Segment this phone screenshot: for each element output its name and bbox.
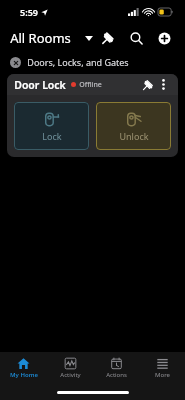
button[interactable]: Doors, Locks, and Gates (10, 56, 185, 68)
button[interactable]: Search (125, 27, 147, 49)
button[interactable]: Activity (47, 352, 93, 384)
staticText: Doors, Locks, and Gates (27, 56, 129, 68)
button[interactable]: My Home (0, 352, 47, 384)
button[interactable]: Lock (14, 102, 89, 150)
button[interactable]: Unlock (96, 102, 171, 150)
button[interactable]: More (139, 352, 185, 384)
staticText: 5:59 (20, 6, 38, 18)
staticText: Offline (79, 80, 102, 90)
button[interactable]: More options (156, 77, 171, 92)
button[interactable]: Pin (97, 27, 119, 49)
staticText: Actions (106, 371, 127, 379)
staticText: Activity (60, 371, 81, 379)
button[interactable]: Pin device (139, 76, 156, 93)
staticText: My Home (10, 371, 38, 379)
button[interactable]: All Rooms (10, 27, 93, 49)
staticText: Lock (42, 130, 62, 142)
staticText: Door Lock (14, 78, 66, 92)
staticText: Unlock (119, 130, 149, 142)
button[interactable]: Add (153, 27, 175, 49)
staticText: More (155, 371, 170, 379)
staticText: All Rooms (10, 29, 71, 47)
button[interactable]: Actions (93, 352, 139, 384)
